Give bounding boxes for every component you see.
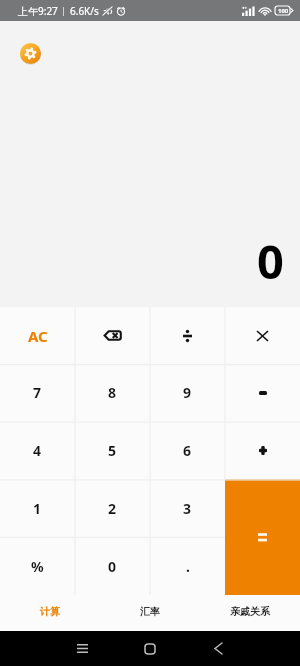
staticText: . — [186, 557, 190, 576]
button[interactable]: Back — [190, 631, 246, 666]
staticText: % — [31, 557, 44, 576]
button[interactable]: 1 — [0, 479, 75, 537]
button[interactable]: 0 — [75, 537, 150, 595]
button[interactable]: Recents — [54, 631, 110, 666]
staticText: AC — [28, 326, 48, 346]
staticText: 2 — [108, 499, 117, 518]
staticText: 1 — [33, 499, 42, 518]
staticText: 6.6K/s — [70, 4, 99, 18]
staticText: 6 — [183, 441, 192, 460]
staticText: 4 — [33, 441, 42, 460]
button[interactable]: 3 — [150, 479, 225, 537]
button[interactable]: Home — [122, 631, 178, 666]
staticText: 汇率 — [140, 605, 160, 618]
button[interactable]: 2 — [75, 479, 150, 537]
staticText: 0 — [257, 229, 284, 293]
button[interactable]: Backspace — [75, 307, 150, 364]
staticText: 100 — [278, 7, 289, 15]
staticText: 5 — [108, 441, 117, 460]
button[interactable]: 5 — [75, 421, 150, 479]
staticText: 3 — [183, 499, 192, 518]
staticText: | — [61, 4, 67, 17]
button[interactable]: % — [0, 537, 75, 595]
button[interactable]: Settings — [20, 43, 41, 64]
button[interactable]: Equals — [225, 479, 300, 537]
staticText: 8 — [108, 383, 117, 402]
button[interactable]: Equals — [225, 537, 300, 595]
button[interactable]: 6 — [150, 421, 225, 479]
button[interactable]: . — [150, 537, 225, 595]
button[interactable]: 8 — [75, 364, 150, 421]
button[interactable]: Minus — [225, 364, 300, 421]
staticText: 7 — [33, 383, 42, 402]
staticText: 亲戚关系 — [230, 605, 270, 618]
button[interactable]: Multiply — [225, 307, 300, 364]
button[interactable]: 计算 — [0, 595, 100, 631]
button[interactable]: 7 — [0, 364, 75, 421]
staticText: 9 — [183, 383, 192, 402]
button[interactable]: 9 — [150, 364, 225, 421]
button[interactable]: 汇率 — [100, 595, 200, 631]
button[interactable]: 亲戚关系 — [200, 595, 300, 631]
staticText: 0 — [108, 557, 117, 576]
button[interactable]: Plus — [225, 421, 300, 479]
staticText: 上午9:27 — [18, 4, 58, 18]
button[interactable]: AC — [0, 307, 75, 364]
button[interactable]: Divide — [150, 307, 225, 364]
button[interactable]: 4 — [0, 421, 75, 479]
staticText: 计算 — [40, 605, 60, 618]
